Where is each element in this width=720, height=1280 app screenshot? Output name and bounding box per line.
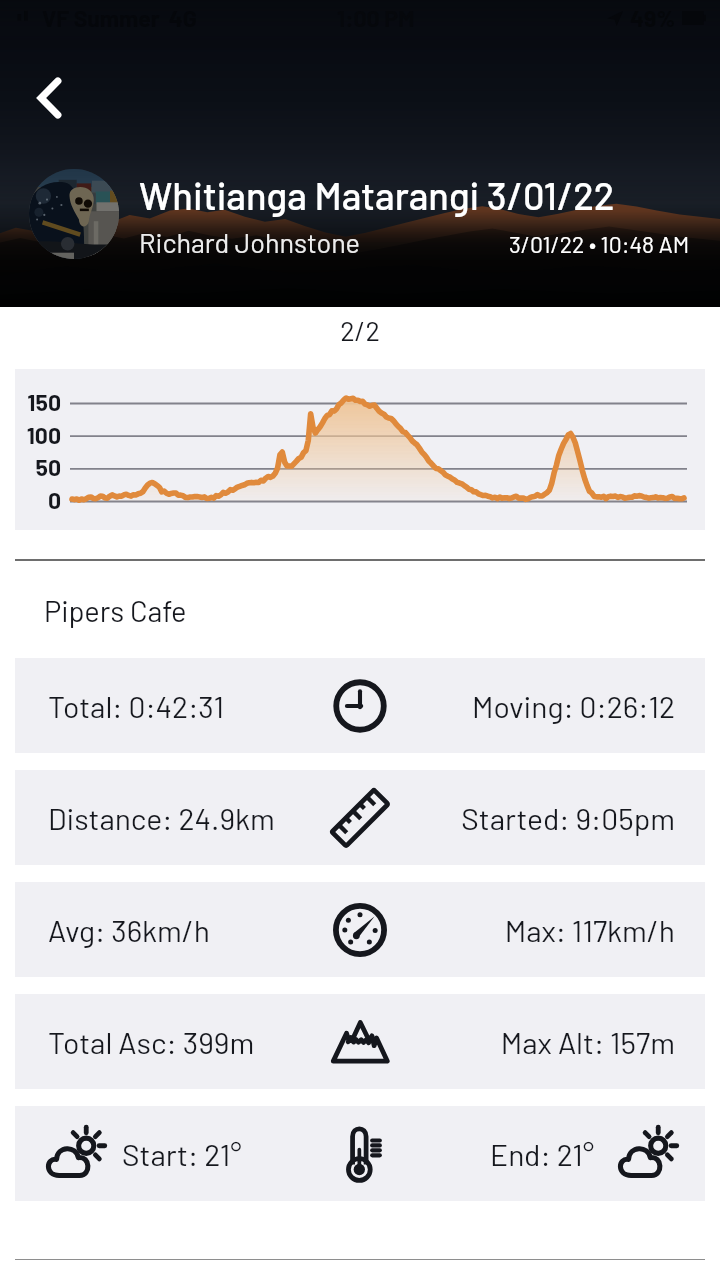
staticText: Max: 117km/h bbox=[393, 912, 675, 948]
staticText: 2/2 bbox=[0, 314, 720, 346]
staticText: Pipers Cafe bbox=[44, 593, 187, 628]
button[interactable]: Total Asc: 399m bbox=[15, 994, 705, 1089]
staticText: 50 bbox=[15, 453, 61, 481]
staticText: Max Alt: 157m bbox=[393, 1024, 675, 1060]
staticText: End: 21° bbox=[490, 1136, 595, 1172]
staticText: Started: 9:05pm bbox=[393, 800, 675, 836]
button[interactable]: Total: 0:42:31 bbox=[15, 658, 705, 753]
button[interactable]: Start: 21° bbox=[15, 1106, 705, 1201]
staticText: 0 bbox=[15, 486, 61, 514]
staticText: 3/01/22 • 10:48 AM bbox=[509, 230, 690, 258]
staticText: Whitianga Matarangi 3/01/22 bbox=[139, 172, 615, 218]
staticText: Avg: 36km/h bbox=[48, 912, 327, 948]
staticText: Moving: 0:26:12 bbox=[393, 688, 675, 724]
button[interactable]: Avg: 36km/h bbox=[15, 882, 705, 977]
button[interactable]: Back bbox=[25, 67, 87, 129]
staticText: Total: 0:42:31 bbox=[48, 688, 327, 724]
staticText: Distance: 24.9km bbox=[48, 800, 327, 836]
button[interactable]: Distance: 24.9km bbox=[15, 770, 705, 865]
staticText: 100 bbox=[15, 421, 61, 449]
staticText: Richard Johnstone bbox=[139, 226, 360, 258]
staticText: 150 bbox=[15, 388, 61, 416]
button[interactable]: Rider profile photo bbox=[29, 169, 119, 259]
staticText: Total Asc: 399m bbox=[48, 1024, 327, 1060]
staticText: Start: 21° bbox=[122, 1136, 242, 1172]
